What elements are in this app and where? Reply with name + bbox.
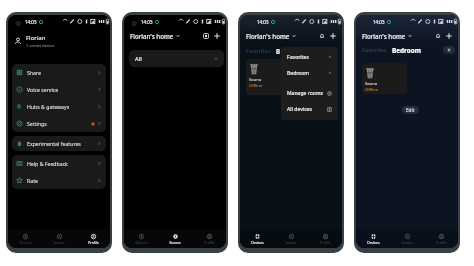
staticText: 14:05 [141, 19, 153, 25]
button[interactable]: Profile [308, 229, 342, 248]
staticText: Scenes [285, 240, 297, 245]
button[interactable]: Scan code [201, 31, 211, 41]
staticText: Manage rooms [287, 90, 324, 97]
button[interactable]: Edit [402, 106, 419, 114]
button[interactable]: All devices [281, 101, 338, 117]
staticText: Profile [204, 240, 215, 245]
button[interactable]: Manage rooms [281, 85, 338, 101]
button[interactable]: Rate [12, 172, 106, 189]
button[interactable]: All [129, 50, 224, 67]
button[interactable]: Notifications [433, 31, 443, 41]
button[interactable]: Notifications [317, 31, 327, 41]
button[interactable]: Devices [356, 229, 390, 248]
button[interactable]: Favorites [362, 46, 387, 54]
button[interactable]: Scenes [390, 229, 424, 248]
staticText: Profile [436, 240, 447, 245]
button[interactable]: Share [12, 64, 106, 81]
button[interactable]: Profile [192, 229, 226, 248]
button[interactable]: Devices [240, 229, 274, 248]
staticText: Offline [365, 87, 379, 93]
staticText: Offline [249, 83, 263, 89]
staticText: Share [27, 69, 41, 76]
staticText: Sauna [249, 77, 262, 83]
button[interactable]: Experimental features [12, 136, 106, 151]
staticText: Profile [320, 240, 331, 245]
staticText: Hubs & gateways [27, 103, 70, 110]
staticText: Florian's home [130, 32, 174, 40]
button[interactable]: Add [212, 31, 222, 41]
button[interactable]: Add [328, 31, 338, 41]
staticText: Devices [135, 240, 148, 245]
staticText: 14:05 [257, 19, 269, 25]
button[interactable]: Profile [424, 229, 458, 248]
staticText: Favorites [287, 54, 309, 61]
staticText: All devices [287, 106, 312, 113]
button[interactable]: Change layout [443, 46, 455, 54]
staticText: Experimental features [27, 140, 81, 147]
button[interactable]: Bedroom [392, 46, 422, 55]
button[interactable]: Sauna [362, 63, 407, 94]
staticText: Sauna [365, 81, 378, 87]
staticText: Profile [88, 240, 99, 245]
staticText: Help & Feedback [27, 160, 68, 167]
staticText: All [135, 55, 142, 63]
staticText: Scenes [53, 240, 65, 245]
button[interactable]: Devices [124, 229, 158, 248]
button[interactable]: Help & Feedback [12, 155, 106, 172]
button[interactable]: Favorites [281, 49, 338, 65]
staticText: 1 smart device [26, 43, 55, 49]
button[interactable]: Bedroom [281, 65, 338, 81]
staticText: Rate [27, 177, 38, 184]
staticText: Settings [27, 120, 47, 127]
staticText: Scenes [169, 240, 181, 245]
button[interactable]: Voice service [12, 81, 106, 98]
button[interactable]: Scenes [42, 229, 76, 248]
button[interactable]: Settings [12, 115, 106, 132]
staticText: Florian's home [246, 32, 290, 40]
button[interactable]: Hubs & gateways [12, 98, 106, 115]
staticText: Scenes [401, 240, 413, 245]
staticText: Devices [367, 240, 380, 245]
staticText: 14:05 [25, 19, 37, 25]
staticText: Edit [406, 107, 415, 113]
button[interactable]: B [276, 47, 281, 55]
staticText: Voice service [27, 86, 59, 93]
staticText: Devices [251, 240, 264, 245]
button[interactable]: Scenes [158, 229, 192, 248]
button[interactable]: Favorites [246, 47, 271, 55]
button[interactable]: Add [444, 31, 454, 41]
staticText: Bedroom [287, 70, 310, 77]
staticText: Florian [26, 34, 46, 42]
staticText: Devices [19, 240, 32, 245]
staticText: 14:05 [373, 19, 385, 25]
button[interactable]: Devices [8, 229, 42, 248]
staticText: Florian's home [362, 32, 406, 40]
button[interactable]: Profile [76, 229, 110, 248]
button[interactable]: Scenes [274, 229, 308, 248]
button[interactable]: Sauna [246, 59, 291, 95]
